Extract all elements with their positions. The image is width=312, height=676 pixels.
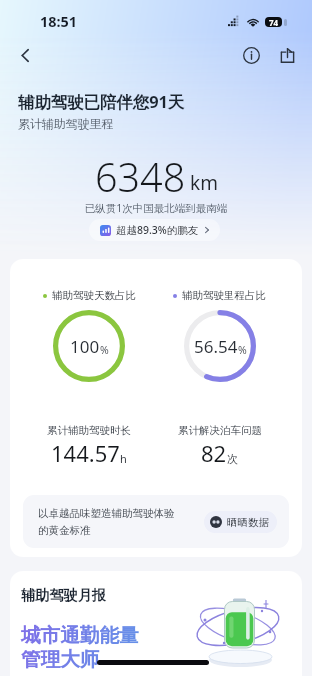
staticText: 晒晒数据: [227, 516, 269, 529]
button[interactable]: 超越89.3%的鹏友: [89, 219, 220, 241]
staticText: 56.54: [194, 335, 238, 358]
button[interactable]: Info: [235, 39, 267, 71]
staticText: 辅助驾驶里程占比: [182, 289, 266, 302]
staticText: 已纵贯1次中国最北端到最南端: [0, 201, 312, 215]
staticText: 累计辅助驾驶里程: [18, 117, 114, 132]
staticText: %: [100, 343, 109, 357]
staticText: 以卓越品味塑造辅助驾驶体验 的黄金标准: [38, 507, 175, 537]
staticText: 超越89.3%的鹏友: [116, 223, 199, 237]
staticText: 6348: [95, 150, 186, 204]
staticText: 辅助驾驶天数占比: [52, 289, 136, 302]
staticText: 累计解决泊车问题: [178, 424, 262, 437]
staticText: 100: [70, 335, 100, 358]
staticText: 辅助驾驶月报: [21, 586, 107, 604]
button[interactable]: Share: [271, 39, 303, 71]
staticText: 144.57: [51, 438, 120, 468]
staticText: 辅助驾驶已陪伴您91天: [18, 90, 185, 112]
staticText: km: [190, 170, 218, 196]
staticText: 城市通勤能量 管理大师: [21, 623, 139, 672]
button[interactable]: 辅助驾驶月报: [10, 571, 302, 676]
staticText: 18:51: [40, 12, 77, 32]
staticText: %: [238, 343, 247, 357]
staticText: h: [120, 451, 127, 466]
staticText: 次: [227, 452, 238, 466]
button[interactable]: Back: [8, 38, 42, 72]
button[interactable]: 晒晒数据: [204, 511, 277, 533]
staticText: 累计辅助驾驶时长: [47, 424, 131, 437]
staticText: 74: [269, 17, 279, 27]
staticText: 82: [201, 438, 227, 468]
